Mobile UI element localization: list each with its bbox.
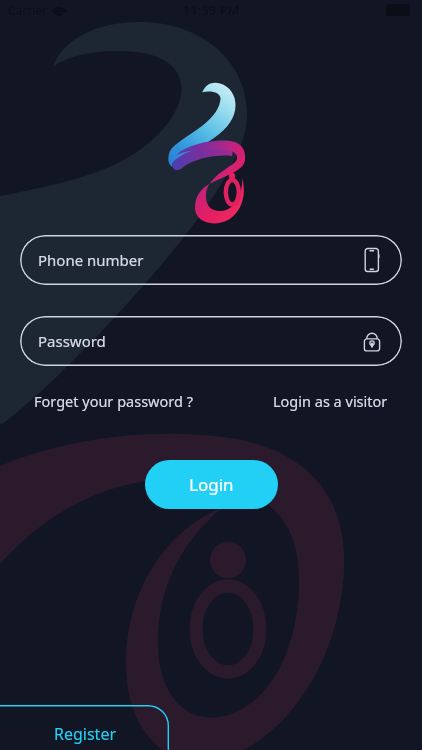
staticText: Login as a visitor — [273, 391, 388, 411]
staticText: Forget your password ? — [34, 391, 193, 411]
button[interactable]: Password — [20, 316, 402, 366]
staticText: 11:59 PM — [183, 1, 240, 19]
button[interactable]: Phone number — [20, 235, 402, 285]
staticText: Password — [38, 331, 106, 351]
button[interactable]: Login as a visitor — [269, 386, 392, 416]
staticText: Carrier — [8, 2, 48, 18]
button[interactable]: Register — [0, 705, 169, 750]
button[interactable]: Login — [145, 460, 278, 509]
other: Phone number — [362, 247, 382, 273]
staticText: Login — [189, 473, 234, 496]
staticText: Phone number — [38, 250, 144, 270]
other: Password — [362, 328, 382, 354]
button[interactable]: Forget your password ? — [30, 386, 197, 416]
staticText: Register — [54, 723, 117, 745]
